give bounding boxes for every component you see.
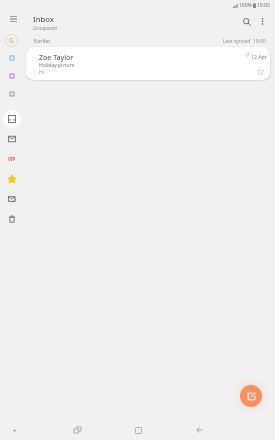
button[interactable]: Back	[193, 424, 205, 436]
button[interactable]: Inbox	[2, 109, 22, 129]
button[interactable]: Drafts	[5, 192, 19, 206]
button[interactable]: More options	[255, 14, 270, 29]
staticText: 10:00	[257, 2, 270, 9]
button[interactable]: Folder	[5, 87, 19, 101]
staticText: 100%	[239, 2, 252, 9]
button[interactable]: Star email	[254, 65, 266, 77]
button[interactable]: Mail	[5, 132, 19, 146]
staticText: Earlier	[34, 37, 51, 44]
button[interactable]: Starred	[5, 172, 19, 186]
staticText: Inbox	[33, 14, 54, 24]
staticText: G	[9, 36, 14, 45]
button[interactable]: VIP	[5, 152, 19, 166]
button[interactable]: Home	[132, 424, 144, 436]
button[interactable]: Compose email	[240, 385, 262, 407]
staticText: VIP	[8, 156, 16, 162]
button[interactable]: Trash	[5, 212, 19, 226]
button[interactable]: Navigation drawer	[3, 9, 23, 29]
staticText: Hi	[39, 69, 44, 76]
button[interactable]: Account	[4, 33, 19, 48]
button[interactable]: Zoe Taylor	[26, 47, 270, 80]
button[interactable]: Folder	[5, 51, 19, 65]
button[interactable]: Assistant	[9, 425, 19, 435]
staticText: 12 Apr	[251, 53, 267, 60]
button[interactable]: Folder	[5, 69, 19, 83]
staticText: Groupawm	[33, 25, 58, 31]
staticText: Last synced 10:00	[223, 38, 266, 45]
button[interactable]: Search	[239, 14, 255, 30]
button[interactable]: Recent apps	[71, 424, 83, 436]
staticText: Holiday picture	[39, 62, 75, 69]
staticText: Zoe Taylor	[39, 53, 74, 63]
